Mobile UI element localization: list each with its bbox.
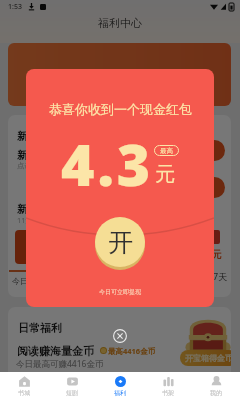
staticText: 新人专享红包 bbox=[17, 148, 83, 162]
staticText: 新人签到 bbox=[17, 202, 61, 216]
staticText: 今日可立即提现 bbox=[99, 288, 141, 296]
staticText: 今日签到 bbox=[12, 276, 44, 286]
staticText: 阅读赚海量金币 bbox=[17, 344, 94, 358]
staticText: 今日最高可赚4416金币 bbox=[16, 358, 104, 370]
staticText: 短剧 bbox=[66, 389, 78, 397]
button[interactable]: 开宝箱得金币 bbox=[180, 350, 231, 366]
staticText: 11连签最高得888元 bbox=[17, 215, 84, 225]
staticText: 福利中心 bbox=[98, 16, 142, 30]
staticText: 最高 bbox=[160, 147, 173, 155]
staticText: 日常福利 bbox=[18, 321, 62, 335]
staticText: 书城 bbox=[18, 389, 30, 397]
staticText: 3元 bbox=[206, 247, 222, 261]
button[interactable]: 我的 bbox=[192, 372, 240, 400]
staticText: 最高4416金币 bbox=[108, 346, 156, 356]
button[interactable] bbox=[8, 43, 231, 106]
button[interactable]: Close dialog bbox=[113, 329, 127, 343]
staticText: 点击即可领取现金 bbox=[17, 161, 77, 170]
staticText: 4.3 bbox=[61, 125, 154, 203]
button[interactable]: 短剧 bbox=[48, 372, 96, 400]
staticText: 开 bbox=[108, 227, 133, 258]
staticText: 我的 bbox=[210, 389, 222, 397]
staticText: 书架 bbox=[162, 389, 174, 397]
button[interactable]: 书城 bbox=[0, 372, 48, 400]
staticText: 元 bbox=[155, 162, 175, 187]
staticText: 1:53 bbox=[8, 2, 22, 12]
staticText: 开宝箱得金币 bbox=[185, 353, 231, 363]
staticText: 福利 bbox=[114, 389, 126, 397]
button[interactable] bbox=[204, 140, 225, 161]
staticText: 恭喜你收到一个现金红包 bbox=[49, 101, 192, 117]
staticText: 新人专属福利 bbox=[17, 129, 83, 143]
staticText: 第7天 bbox=[204, 270, 228, 282]
button[interactable]: 书架 bbox=[144, 372, 192, 400]
button[interactable]: 开 bbox=[95, 217, 145, 267]
button[interactable]: 福利 bbox=[96, 372, 144, 400]
button[interactable] bbox=[204, 177, 225, 198]
button[interactable] bbox=[15, 230, 61, 264]
